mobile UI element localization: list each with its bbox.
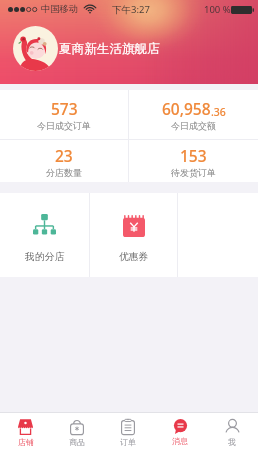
button[interactable]: 我的分店 — [0, 193, 89, 277]
button[interactable]: 153 — [129, 140, 258, 182]
button[interactable]: 订单 — [102, 413, 154, 452]
staticText: 消息 — [172, 436, 188, 446]
button[interactable]: 优惠券 — [90, 193, 177, 277]
button[interactable]: 商品 — [51, 413, 102, 452]
staticText: 我 — [228, 437, 236, 447]
staticText: 今日成交订单 — [37, 120, 91, 131]
button[interactable]: 60,958 — [129, 90, 258, 139]
staticText: .36 — [211, 105, 226, 119]
staticText: 分店数量 — [46, 167, 82, 178]
button[interactable]: 店铺 — [0, 413, 51, 452]
button[interactable]: 23 — [0, 140, 128, 182]
staticText: 153 — [180, 145, 207, 166]
staticText: 待发货订单 — [171, 167, 216, 178]
staticText: 下午3:27 — [112, 3, 150, 16]
staticText: 今日成交额 — [171, 120, 216, 131]
staticText: 商品 — [69, 437, 85, 447]
staticText: 夏商新生活旗舰店 — [59, 41, 160, 57]
button[interactable]: 我 — [206, 413, 258, 452]
staticText: 中国移动 — [41, 3, 78, 15]
staticText: 订单 — [120, 437, 136, 447]
staticText: 100 % — [204, 3, 231, 16]
button[interactable]: 573 — [0, 90, 128, 139]
staticText: 573 — [51, 98, 78, 119]
button[interactable]: 消息 — [154, 413, 206, 452]
staticText: 优惠券 — [119, 251, 149, 263]
staticText: 店铺 — [18, 437, 34, 447]
staticText: 我的分店 — [25, 251, 65, 263]
staticText: 23 — [55, 145, 73, 166]
staticText: 60,958 — [162, 98, 211, 119]
